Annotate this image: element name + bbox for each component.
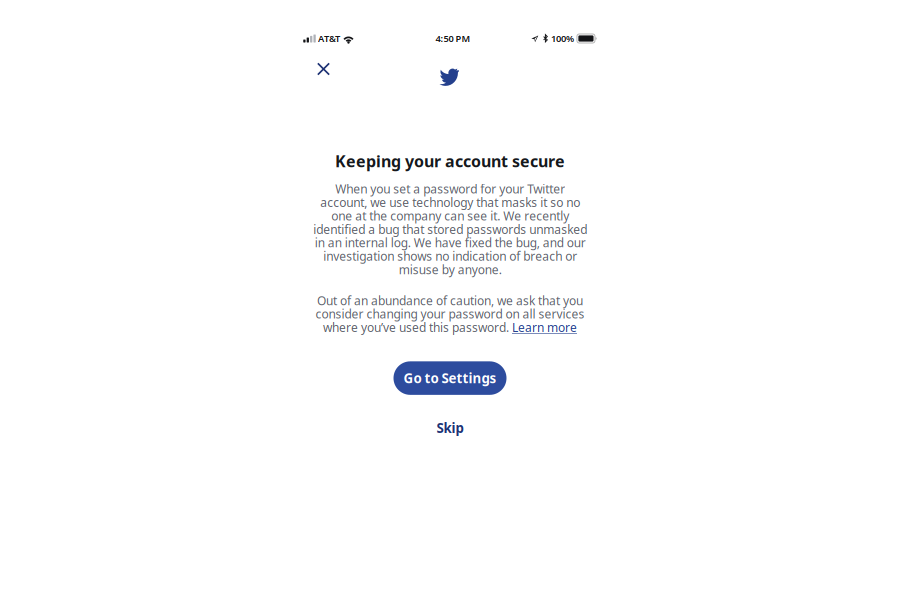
staticText: Go to Settings: [403, 369, 496, 387]
button[interactable]: Close: [310, 55, 337, 82]
button[interactable]: Skip: [418, 417, 482, 439]
staticText: Keeping your account secure: [335, 150, 565, 172]
staticText: Out of an abundance of caution, we ask t…: [317, 292, 583, 308]
staticText: Skip: [436, 419, 463, 437]
button[interactable]: Learn more: [512, 319, 577, 335]
staticText: Learn more: [512, 319, 577, 335]
staticText: where you’ve used this password.: [323, 319, 512, 335]
staticText: 100%: [551, 32, 574, 45]
staticText: AT&T: [318, 32, 340, 45]
staticText: 4:50 PM: [435, 32, 470, 45]
button[interactable]: Go to Settings: [393, 361, 506, 395]
staticText: consider changing your password on all s…: [315, 306, 584, 322]
staticText: When you set a password for your Twitter…: [313, 181, 587, 277]
